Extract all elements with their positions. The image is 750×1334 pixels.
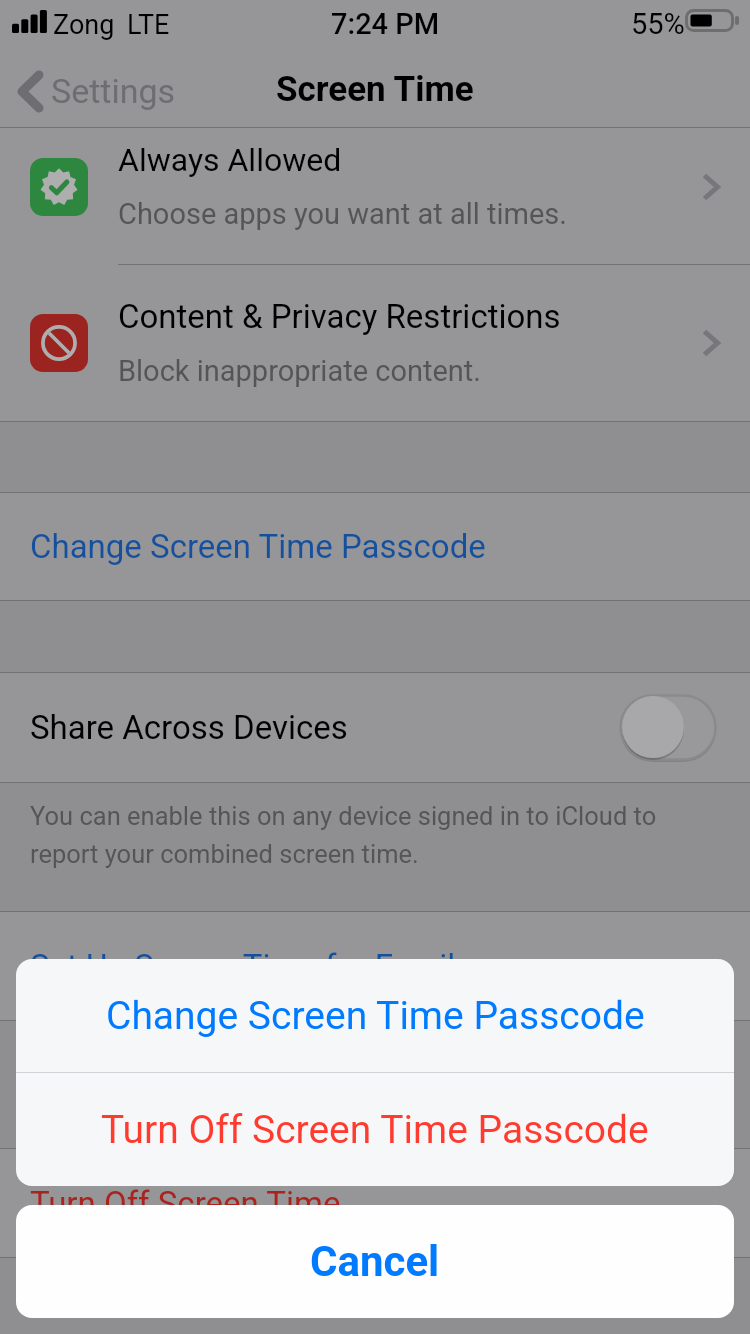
staticText: Screen Time <box>276 69 474 110</box>
staticText: Always Allowed <box>118 141 342 179</box>
staticText: Zong <box>53 9 115 41</box>
button[interactable]: Share Across Devices <box>619 694 717 762</box>
button[interactable]: Always Allowed <box>0 128 750 264</box>
button[interactable]: Set Up Screen Time for Family <box>0 912 750 1020</box>
button[interactable]: Content and Privacy Restrictions <box>0 265 750 421</box>
button[interactable]: Turn Off Screen Time <box>0 1149 750 1257</box>
staticText: Turn Off Screen Time <box>30 1184 341 1223</box>
other: Always Allowed <box>37 165 81 209</box>
button[interactable]: Back to Settings <box>0 56 200 127</box>
button[interactable]: Share Across Devices <box>0 673 750 782</box>
staticText: Turn Off Screen Time Passcode <box>101 1107 649 1153</box>
staticText: Cancel <box>310 1237 440 1286</box>
staticText: Change Screen Time Passcode <box>106 993 645 1039</box>
staticText: Share Across Devices <box>30 708 348 747</box>
staticText: 7:24 PM <box>331 7 440 41</box>
staticText: Choose apps you want at all times. <box>118 197 567 231</box>
staticText: You can enable this on any device signed… <box>30 801 710 869</box>
staticText: Set Up Screen Time for Family <box>30 947 471 986</box>
staticText: Block inappropriate content. <box>118 354 481 388</box>
staticText: Settings <box>51 71 176 111</box>
button[interactable]: Change Screen Time Passcode <box>0 493 750 600</box>
button[interactable]: Cancel <box>16 1205 734 1318</box>
staticText: LTE <box>127 9 170 41</box>
button[interactable]: Turn Off Screen Time Passcode <box>16 1073 734 1186</box>
staticText: Change Screen Time Passcode <box>30 527 486 566</box>
staticText: Content & Privacy Restrictions <box>118 297 561 336</box>
other: Content and Privacy Restrictions <box>37 321 81 365</box>
button[interactable]: Change Screen Time Passcode <box>16 959 734 1072</box>
staticText: 55% <box>631 7 685 41</box>
